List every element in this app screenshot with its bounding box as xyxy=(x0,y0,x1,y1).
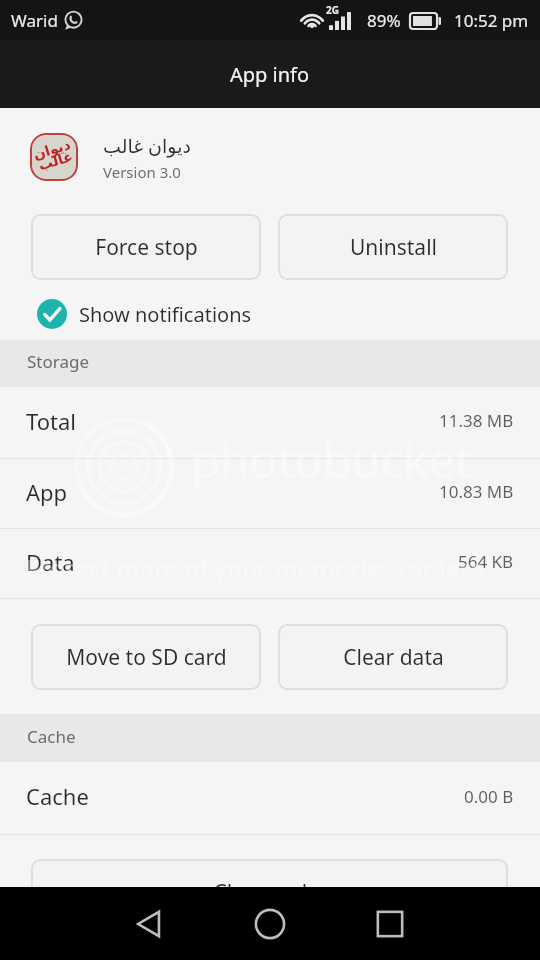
staticText: Show notifications xyxy=(79,301,252,328)
staticText: Total xyxy=(26,406,76,436)
staticText: Move to SD card xyxy=(66,643,227,672)
staticText: Clear data xyxy=(343,643,444,672)
button[interactable]: Recents xyxy=(330,887,450,960)
staticText: Data xyxy=(26,547,75,577)
staticText: Warid xyxy=(11,9,58,32)
staticText: Clear cache xyxy=(213,878,327,907)
staticText: Force stop xyxy=(95,233,198,262)
staticText: 2G xyxy=(326,3,339,17)
button[interactable]: Back xyxy=(90,887,210,960)
button[interactable]: Show notifications xyxy=(0,293,540,337)
staticText: 10.83 MB xyxy=(439,480,514,503)
staticText: App info xyxy=(230,61,310,88)
staticText: photobucket xyxy=(191,428,472,492)
staticText: App xyxy=(26,477,68,507)
staticText: Version 3.0 xyxy=(103,162,181,182)
staticText: 89% xyxy=(367,9,401,32)
button[interactable]: Uninstall xyxy=(278,214,508,280)
staticText: دیوان xyxy=(31,136,72,162)
staticText: Storage xyxy=(27,350,90,373)
staticText: Cache xyxy=(27,725,76,748)
button[interactable]: Total xyxy=(0,387,540,458)
staticText: 564 KB xyxy=(458,550,514,573)
staticText: 11.38 MB xyxy=(439,409,514,432)
button[interactable]: Clear data xyxy=(278,624,508,690)
button[interactable]: Force stop xyxy=(31,214,261,280)
staticText: غالب xyxy=(37,148,75,173)
button[interactable]: Clear cache xyxy=(31,859,508,925)
staticText: 0.00 B xyxy=(464,785,514,808)
staticText: 10:52 pm xyxy=(454,9,529,32)
button[interactable]: Home xyxy=(210,887,330,960)
button[interactable]: Cache xyxy=(0,762,540,834)
button[interactable]: App xyxy=(0,459,540,528)
staticText: دیوان غالب xyxy=(103,133,191,159)
staticText: Cache xyxy=(26,781,89,811)
button[interactable]: Move to SD card xyxy=(31,624,261,690)
staticText: Uninstall xyxy=(350,233,437,262)
button[interactable]: Data xyxy=(0,529,540,598)
staticText: Protect more of your memories for less xyxy=(25,551,484,584)
